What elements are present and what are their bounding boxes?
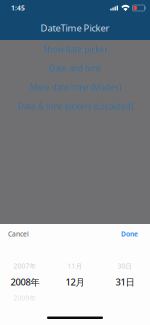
staticText: Done bbox=[121, 230, 138, 238]
staticText: DateTime Picker bbox=[40, 22, 109, 34]
button[interactable]: Cancel bbox=[0, 226, 37, 242]
staticText: Show date picker bbox=[43, 44, 107, 55]
staticText: Cancel bbox=[8, 230, 29, 238]
staticText: 11月 bbox=[67, 262, 82, 270]
staticText: 2008年 bbox=[10, 276, 39, 288]
staticText: 12月 bbox=[65, 276, 84, 288]
staticText: 2007年 bbox=[13, 262, 36, 270]
button[interactable]: Date and time bbox=[0, 59, 150, 78]
staticText: Date & time pickers (Localized) bbox=[17, 101, 132, 112]
staticText: 1:45 bbox=[11, 4, 25, 12]
staticText: More date/time (Modes) bbox=[29, 82, 120, 93]
staticText: 31日 bbox=[115, 276, 134, 288]
staticText: 2009年 bbox=[13, 294, 36, 302]
staticText: Date and time bbox=[48, 63, 101, 74]
staticText: 30日 bbox=[117, 262, 132, 270]
button[interactable]: Date & time pickers (Localized) bbox=[0, 97, 150, 116]
button[interactable]: Show date picker bbox=[0, 40, 150, 59]
button[interactable]: Done bbox=[109, 226, 150, 242]
button[interactable]: More date/time (Modes) bbox=[0, 78, 150, 97]
